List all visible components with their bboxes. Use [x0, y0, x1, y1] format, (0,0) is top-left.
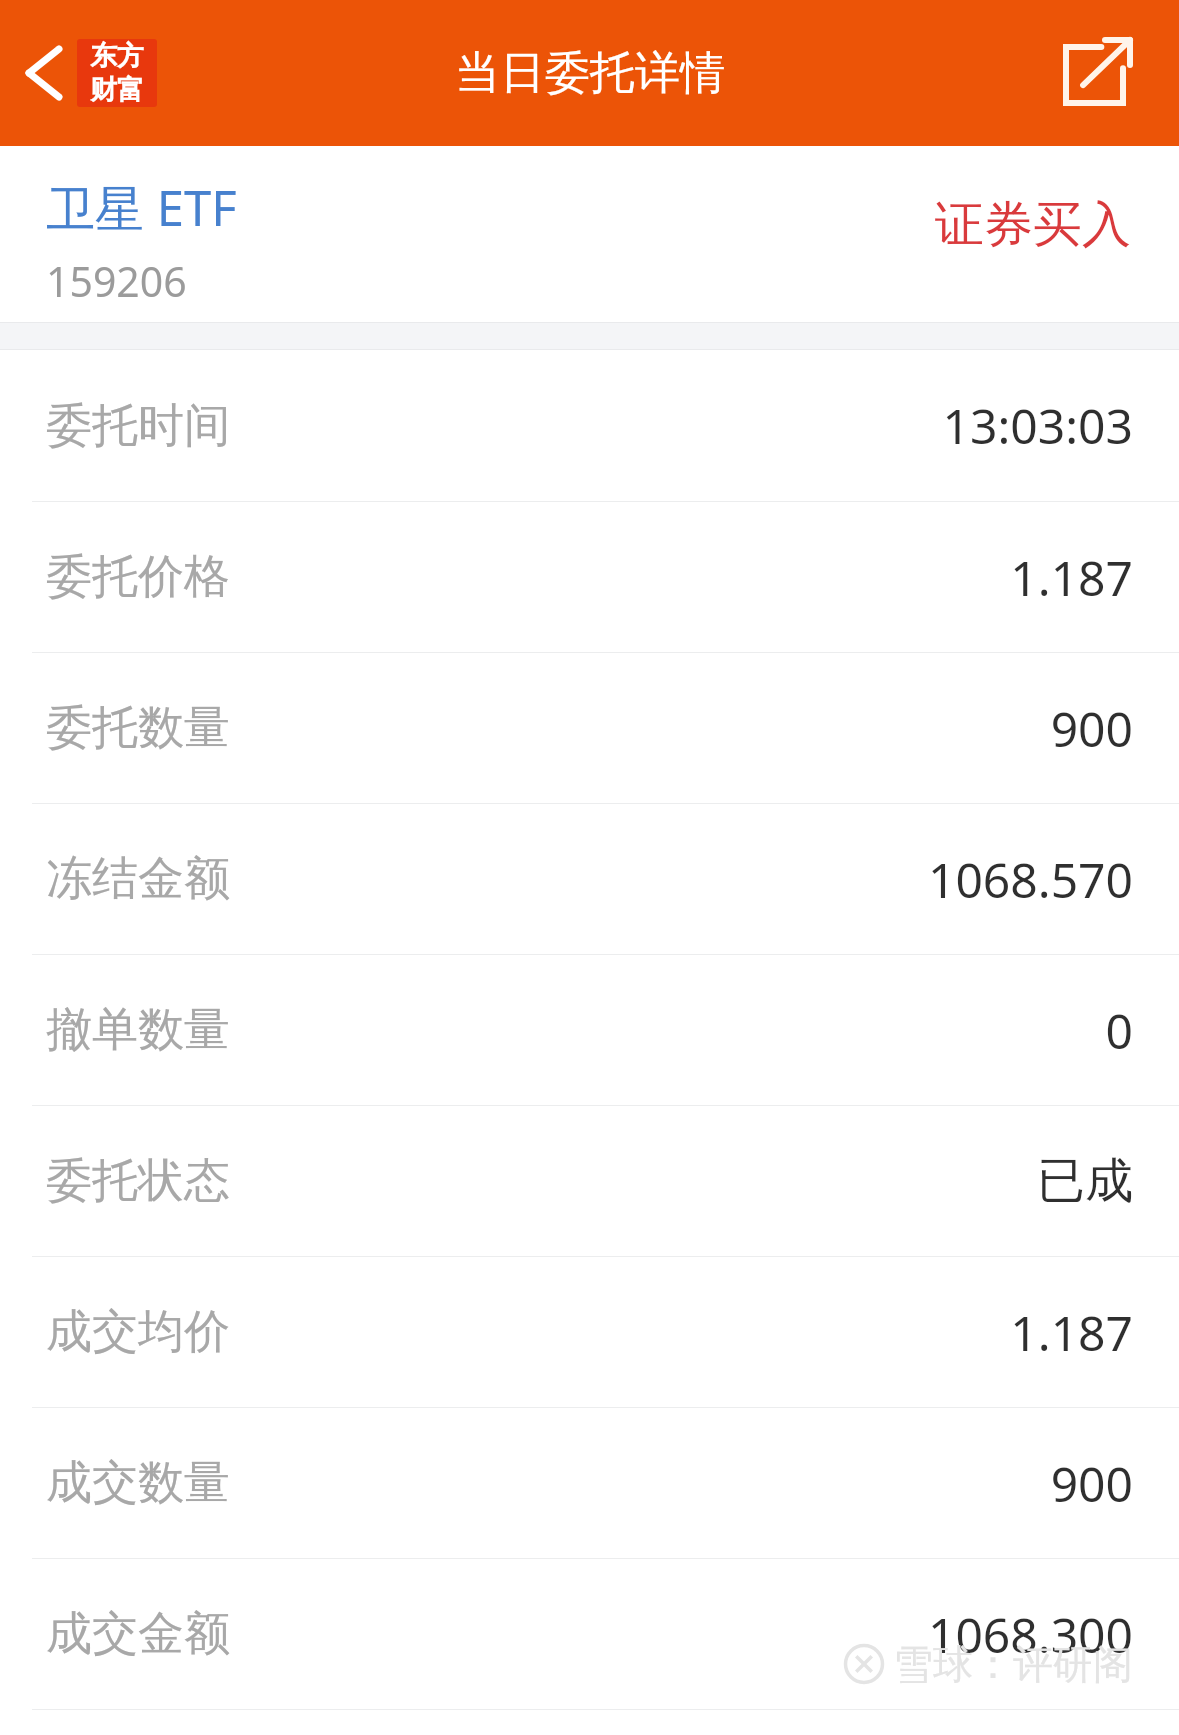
staticText: 当日委托详情	[455, 45, 725, 102]
staticText: 成交数量	[46, 1454, 230, 1512]
button[interactable]: 委托数量	[0, 653, 1179, 803]
button[interactable]: 撤单数量	[0, 955, 1179, 1105]
button[interactable]: 委托价格	[0, 502, 1179, 652]
staticText: 财富	[90, 73, 144, 107]
staticText: 0	[1105, 998, 1133, 1063]
staticText: 900	[1050, 1451, 1133, 1516]
staticText: 已成	[1037, 1151, 1133, 1211]
staticText: 雪球：评研阁	[893, 1639, 1133, 1689]
button[interactable]: 委托时间	[0, 350, 1179, 501]
button[interactable]: 卫星 ETF	[46, 174, 237, 241]
staticText: 13:03:03	[942, 393, 1133, 458]
button[interactable]: 成交数量	[0, 1408, 1179, 1558]
staticText: 委托时间	[46, 397, 230, 455]
staticText: 1068.570	[927, 847, 1133, 912]
staticText: 159206	[46, 253, 187, 309]
button[interactable]: Back	[6, 38, 76, 108]
staticText: 成交金额	[46, 1605, 230, 1663]
button[interactable]: 成交均价	[0, 1257, 1179, 1407]
staticText: 成交均价	[46, 1303, 230, 1361]
staticText: 东方	[90, 39, 144, 73]
staticText: 委托数量	[46, 699, 230, 757]
staticText: 委托价格	[46, 548, 230, 606]
button[interactable]: Share	[1055, 31, 1139, 115]
button[interactable]: 委托状态	[0, 1106, 1179, 1256]
staticText: 卫星 ETF	[46, 174, 237, 241]
staticText: 撤单数量	[46, 1001, 230, 1059]
button[interactable]: 成交金额	[0, 1559, 1179, 1709]
button[interactable]: 冻结金额	[0, 804, 1179, 954]
staticText: 900	[1050, 696, 1133, 761]
staticText: 1.187	[1010, 1300, 1133, 1365]
staticText: 冻结金额	[46, 850, 230, 908]
staticText: 1.187	[1010, 545, 1133, 610]
staticText: 1068.300	[927, 1602, 1133, 1667]
staticText: 委托状态	[46, 1152, 230, 1210]
staticText: 证券买入	[935, 194, 1131, 256]
